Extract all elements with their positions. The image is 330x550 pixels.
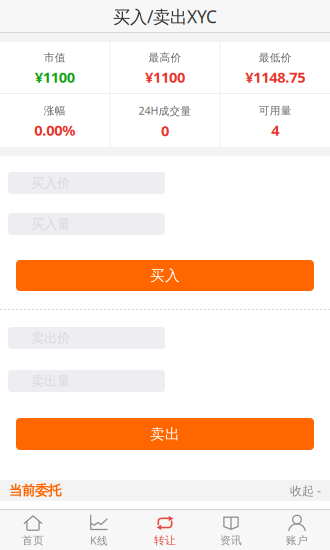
staticText: 最低价 (259, 51, 292, 64)
button[interactable]: 首页 (0, 509, 66, 550)
staticText: 0.00% (34, 120, 75, 140)
button[interactable]: 买入 (16, 260, 314, 291)
button[interactable]: 卖出价 (8, 327, 165, 349)
staticText: 转让 (154, 534, 176, 547)
button[interactable]: 转让 (132, 509, 198, 550)
staticText: ¥1148.75 (245, 67, 305, 87)
staticText: K线 (90, 533, 108, 548)
staticText: 账户 (286, 534, 308, 547)
button[interactable]: 账户 (264, 509, 330, 550)
staticText: 首页 (22, 534, 44, 547)
staticText: 卖出 (150, 425, 180, 443)
staticText: 买入量 (31, 216, 70, 232)
button[interactable]: 买入量 (8, 213, 165, 235)
staticText: 收起 - (290, 482, 321, 498)
button[interactable]: 资讯 (198, 509, 264, 550)
staticText: 0 (161, 121, 169, 140)
staticText: 资讯 (220, 534, 242, 547)
staticText: 4 (271, 120, 279, 140)
staticText: 市值 (44, 51, 66, 64)
staticText: 最高价 (148, 51, 181, 64)
staticText: 涨幅 (44, 104, 66, 117)
staticText: 可用量 (259, 104, 292, 117)
button[interactable]: 卖出量 (8, 370, 165, 392)
button[interactable]: 买入价 (8, 172, 165, 194)
staticText: 卖出价 (31, 330, 70, 346)
staticText: 买入 (150, 266, 180, 284)
button[interactable]: 收起 - (290, 482, 321, 498)
staticText: 买入/卖出XYC (113, 5, 217, 28)
button[interactable]: 卖出 (16, 418, 314, 450)
staticText: 24H成交量 (138, 104, 191, 118)
staticText: 当前委托 (9, 482, 61, 499)
staticText: ¥1100 (35, 67, 75, 87)
staticText: 买入价 (31, 175, 70, 191)
staticText: ¥1100 (145, 67, 185, 87)
button[interactable]: K线 (66, 509, 132, 550)
staticText: 卖出量 (31, 373, 70, 389)
